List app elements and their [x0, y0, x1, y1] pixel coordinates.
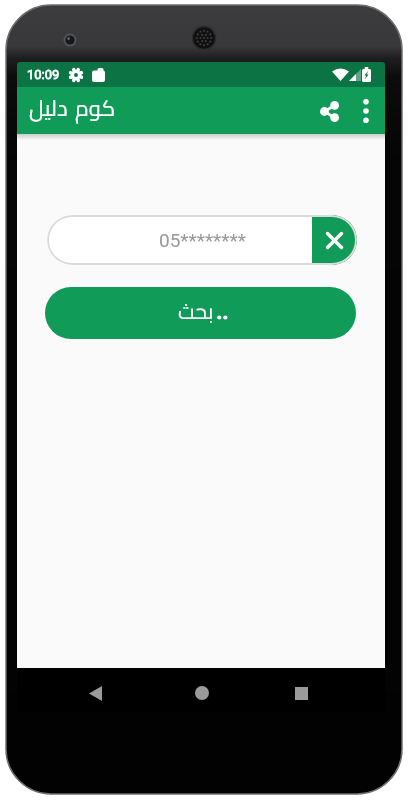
- button[interactable]: [353, 98, 379, 124]
- button[interactable]: بحث: [45, 287, 356, 339]
- staticText: 05********: [159, 229, 246, 251]
- staticText: 10:09: [27, 67, 60, 82]
- button[interactable]: [312, 215, 357, 265]
- staticText: بحث: [178, 292, 214, 331]
- button[interactable]: [78, 676, 112, 710]
- button[interactable]: [284, 676, 318, 710]
- button[interactable]: [309, 91, 349, 131]
- staticText: دليل: [29, 87, 68, 128]
- button[interactable]: [185, 676, 219, 710]
- button[interactable]: 05********: [47, 215, 357, 265]
- staticText: كوم: [75, 87, 116, 128]
